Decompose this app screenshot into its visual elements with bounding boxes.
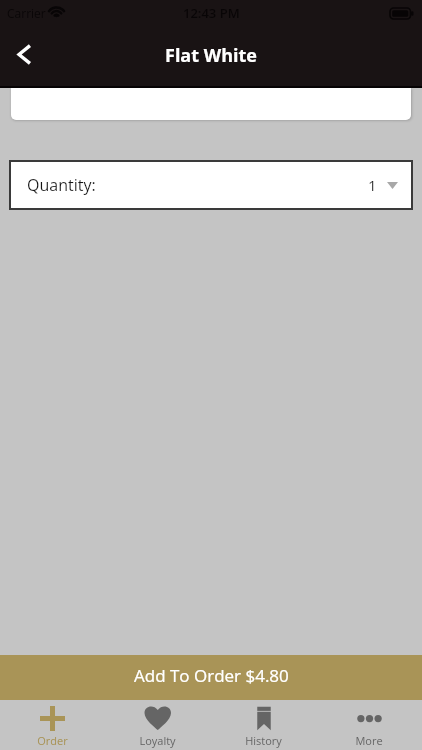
button[interactable]: More <box>316 700 422 748</box>
button[interactable]: Add To Order $4.80 <box>0 655 422 700</box>
staticText: 1 <box>368 175 377 195</box>
staticText: Quantity: <box>27 174 96 196</box>
button[interactable]: Quantity: <box>9 160 413 210</box>
staticText: Carrier <box>7 5 46 21</box>
button[interactable]: History <box>210 700 316 748</box>
button[interactable]: Loyalty <box>105 700 210 748</box>
staticText: Loyalty <box>139 733 176 748</box>
staticText: Flat White <box>165 43 257 68</box>
staticText: 12:43 PM <box>183 4 240 22</box>
staticText: More <box>355 733 383 748</box>
button[interactable]: Order <box>0 700 105 748</box>
staticText: History <box>245 733 282 748</box>
staticText: Order <box>37 733 68 748</box>
staticText: Add To Order $4.80 <box>134 664 289 687</box>
button[interactable]: Back <box>0 30 48 78</box>
